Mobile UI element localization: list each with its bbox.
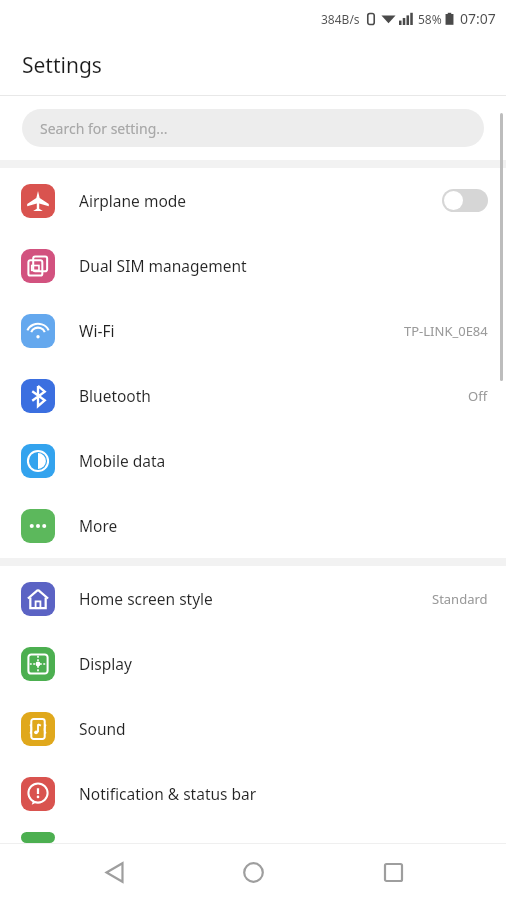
button[interactable]: Airplane mode [0, 168, 506, 233]
staticText: Notification & status bar [79, 783, 257, 804]
button[interactable]: Wi-Fi [0, 298, 506, 363]
staticText: Home screen style [79, 588, 213, 609]
staticText: More [79, 515, 118, 536]
staticText: Mobile data [79, 450, 166, 471]
button[interactable]: Mobile data [0, 428, 506, 493]
button[interactable]: Home screen style [0, 566, 506, 631]
staticText: 384B/s [321, 11, 360, 27]
button[interactable]: Home [227, 846, 279, 898]
button[interactable]: Display [0, 631, 506, 696]
button[interactable]: Sound [0, 696, 506, 761]
staticText: 58% [418, 11, 442, 27]
staticText: Off [468, 387, 488, 405]
staticText: 07:07 [460, 9, 496, 28]
button[interactable]: Dual SIM management [0, 233, 506, 298]
button[interactable]: Search for setting... [22, 109, 484, 147]
button[interactable]: Bluetooth [0, 363, 506, 428]
staticText: Dual SIM management [79, 255, 247, 276]
staticText: Airplane mode [79, 190, 187, 211]
button[interactable]: Airplane mode toggle [442, 189, 488, 212]
button[interactable]: Back [88, 846, 140, 898]
button[interactable]: Notification & status bar [0, 761, 506, 826]
staticText: TP-LINK_0E84 [404, 322, 488, 340]
staticText: Display [79, 653, 132, 674]
staticText: Standard [432, 590, 488, 608]
button[interactable]: More [0, 493, 506, 558]
button[interactable]: Recents [367, 846, 419, 898]
staticText: Settings [22, 51, 102, 80]
staticText: Wi-Fi [79, 320, 115, 341]
staticText: Bluetooth [79, 385, 151, 406]
staticText: Search for setting... [40, 119, 168, 138]
staticText: Sound [79, 718, 126, 739]
